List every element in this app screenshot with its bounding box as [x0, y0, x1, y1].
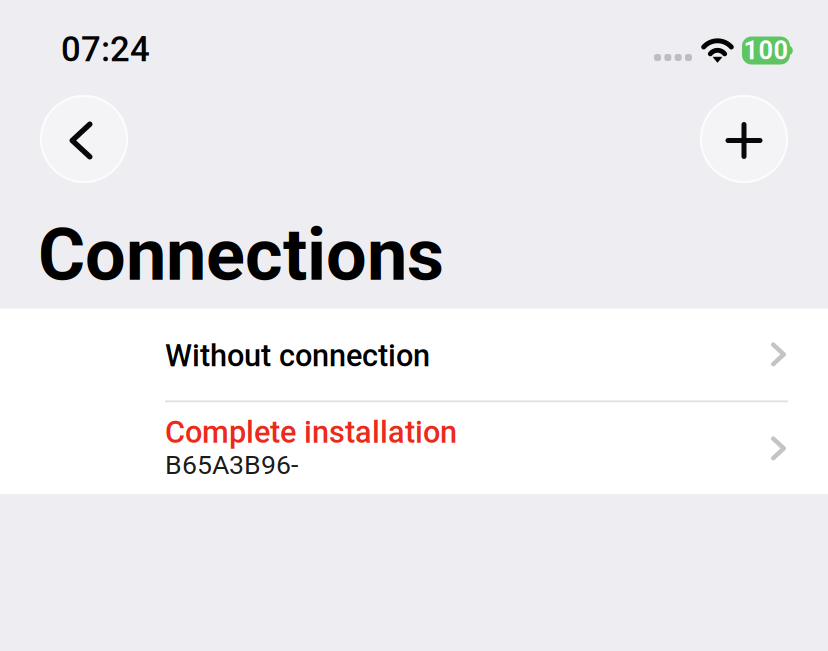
button[interactable]: Without connection	[0, 308, 828, 400]
staticText: Complete installation	[165, 414, 457, 450]
staticText: B65A3B96-	[165, 449, 298, 481]
staticText: 100	[743, 36, 788, 65]
staticText: Connections	[38, 213, 444, 297]
staticText: Without connection	[165, 338, 430, 374]
staticText: 07:24	[61, 29, 150, 70]
button[interactable]: Add connection	[700, 95, 788, 183]
button[interactable]: Back	[40, 95, 128, 183]
button[interactable]: Complete installation	[0, 402, 828, 494]
